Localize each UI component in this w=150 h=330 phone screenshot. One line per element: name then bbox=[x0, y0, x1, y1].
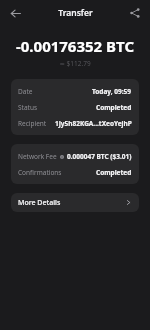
staticText: Status bbox=[18, 103, 38, 112]
button[interactable]: Share bbox=[125, 3, 145, 23]
button[interactable]: Network Fee bbox=[18, 148, 132, 164]
staticText: Transfer bbox=[58, 7, 93, 19]
staticText: More Details bbox=[18, 198, 61, 208]
button[interactable]: Status bbox=[18, 99, 132, 115]
button[interactable]: Confirmations bbox=[18, 164, 132, 180]
staticText: 1Jy5h82KGA...tXeoYejhP bbox=[55, 119, 132, 128]
staticText: Today, 09:59 bbox=[92, 87, 132, 96]
staticText: -0.00176352 BTC bbox=[0, 36, 150, 56]
staticText: Date bbox=[18, 87, 33, 96]
staticText: Completed bbox=[96, 168, 132, 177]
staticText: 0.000047 BTC ($3.01) bbox=[67, 152, 132, 161]
staticText: Recipient bbox=[18, 119, 47, 128]
staticText: Network Fee bbox=[18, 152, 57, 161]
staticText: Completed bbox=[96, 103, 132, 112]
button[interactable]: Recipient bbox=[18, 115, 132, 131]
staticText: ≈ $112.79 bbox=[0, 59, 150, 68]
button[interactable]: More Details bbox=[11, 193, 139, 212]
button[interactable]: Back bbox=[5, 3, 25, 23]
button[interactable]: Date bbox=[18, 83, 132, 99]
staticText: Confirmations bbox=[18, 168, 62, 177]
